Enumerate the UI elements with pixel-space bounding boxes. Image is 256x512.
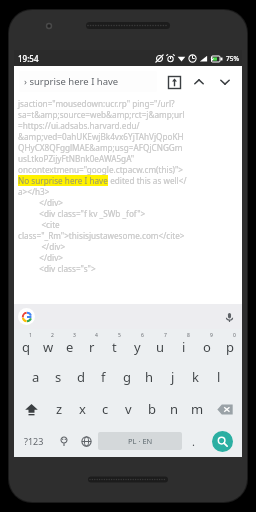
staticText: 19:54 — [18, 53, 39, 64]
button[interactable]: 9 — [195, 329, 218, 361]
button[interactable]: h — [138, 361, 161, 393]
staticText: <div class="s"> — [18, 263, 96, 274]
staticText: PL · EN — [128, 436, 153, 446]
staticText: c — [102, 400, 109, 418]
staticText: </div> — [18, 252, 64, 263]
button[interactable]: Voice search — [220, 308, 238, 326]
button[interactable]: 1 — [15, 329, 37, 361]
button[interactable]: PL · EN — [98, 432, 182, 450]
staticText: 75% — [226, 54, 239, 63]
button[interactable]: Previous result — [187, 70, 211, 94]
staticText: jsaction="mousedown:ucr.rp" ping="/url? — [18, 98, 175, 109]
button[interactable]: f — [92, 361, 115, 393]
button[interactable]: Change language — [75, 425, 98, 457]
staticText: edited this as well</ — [108, 175, 187, 186]
staticText: oncontextmenu="google.ctpacw.cm(this)"> — [18, 164, 184, 175]
staticText: › surprise here I have — [24, 75, 119, 88]
button[interactable]: . — [182, 425, 205, 457]
button[interactable]: Backspace — [209, 393, 241, 425]
button[interactable]: g — [115, 361, 138, 393]
button[interactable]: k — [184, 361, 207, 393]
button[interactable]: a — [25, 361, 47, 393]
staticText: m — [191, 400, 204, 418]
staticText: p — [226, 338, 234, 356]
staticText: y — [134, 338, 141, 356]
staticText: k — [192, 368, 199, 386]
staticText: . — [192, 434, 195, 449]
staticText: 6 — [141, 332, 144, 339]
staticText: q — [22, 338, 30, 356]
button[interactable]: 0 — [218, 329, 241, 361]
staticText: No surprise here I have — [18, 175, 108, 186]
staticText: j — [171, 368, 175, 386]
staticText: b — [148, 400, 156, 418]
button[interactable]: l — [207, 361, 230, 393]
staticText: u — [156, 338, 165, 356]
button[interactable]: Next result — [213, 70, 237, 94]
staticText: x — [79, 400, 86, 418]
staticText: n — [170, 400, 179, 418]
staticText: z — [56, 400, 63, 418]
staticText: e — [66, 338, 74, 356]
staticText: 5 — [118, 332, 121, 339]
button[interactable]: d — [69, 361, 92, 393]
staticText: </div> — [18, 197, 64, 208]
staticText: s — [55, 368, 62, 386]
staticText: ?123 — [24, 435, 44, 447]
staticText: </div> — [18, 241, 66, 252]
button[interactable]: Emoji — [52, 425, 75, 457]
button[interactable]: › surprise here I have — [19, 71, 157, 92]
staticText: g — [123, 368, 131, 386]
staticText: 1 — [29, 332, 32, 339]
button[interactable]: m — [186, 393, 209, 425]
staticText: a></h3> — [18, 186, 50, 197]
staticText: 8 — [187, 332, 190, 339]
button[interactable]: Shift — [15, 393, 48, 425]
button[interactable]: x — [71, 393, 94, 425]
staticText: 2 — [51, 332, 54, 339]
button[interactable]: jsaction="mousedown:ucr.rp" ping="/url? — [14, 97, 242, 304]
staticText: =https://ui.adsabs.harvard.edu/ — [18, 120, 140, 131]
button[interactable]: 2 — [37, 329, 59, 361]
staticText: 9 — [210, 332, 213, 339]
staticText: <cite — [18, 219, 60, 230]
button[interactable]: n — [163, 393, 186, 425]
staticText: 3 — [73, 332, 76, 339]
staticText: class="_Rm">thisisjustawesome.com</cite> — [18, 230, 185, 241]
button[interactable]: z — [48, 393, 71, 425]
staticText: &amp;ved=0ahUKEwjBk4vx6YjTAhVjQpoKH — [18, 131, 184, 142]
button[interactable]: j — [161, 361, 184, 393]
staticText: h — [145, 368, 154, 386]
staticText: t — [112, 338, 117, 356]
staticText: a — [32, 368, 40, 386]
staticText: w — [43, 338, 54, 356]
button[interactable]: Search — [212, 431, 233, 452]
staticText: <div class="f kv _SWb _fof"> — [18, 208, 146, 219]
button[interactable]: v — [117, 393, 140, 425]
staticText: v — [125, 400, 132, 418]
button[interactable]: 4 — [81, 329, 103, 361]
staticText: sa=t&amp;source=web&amp;rct=j&amp;url — [18, 109, 185, 120]
staticText: r — [89, 338, 95, 356]
button[interactable]: Share — [163, 71, 185, 93]
staticText: f — [101, 368, 106, 386]
staticText: l — [217, 368, 221, 386]
staticText: usLtkoPZijyFtNBnk0eAWA5gA" — [18, 153, 135, 164]
button[interactable]: 5 — [103, 329, 126, 361]
staticText: 4 — [95, 332, 98, 339]
staticText: QHyCX8QFgglMAE&amp;usg=AFQjCNGGm — [18, 142, 183, 153]
staticText: o — [203, 338, 211, 356]
button[interactable]: 3 — [59, 329, 81, 361]
staticText: d — [77, 368, 85, 386]
button[interactable]: ?123 — [16, 425, 52, 457]
button[interactable]: 7 — [149, 329, 172, 361]
button[interactable]: 6 — [126, 329, 149, 361]
staticText: 0 — [233, 332, 236, 339]
button[interactable]: c — [94, 393, 117, 425]
staticText: 7 — [164, 332, 167, 339]
button[interactable]: 8 — [172, 329, 195, 361]
button[interactable]: b — [140, 393, 163, 425]
button[interactable]: Voice search — [14, 304, 242, 329]
button[interactable]: s — [47, 361, 69, 393]
staticText: i — [182, 338, 186, 356]
